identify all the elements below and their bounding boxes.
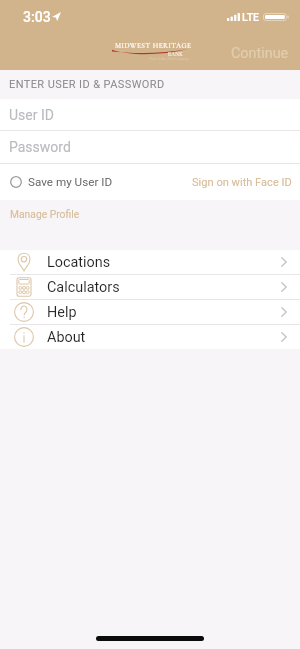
staticText: Locations: [47, 254, 111, 271]
button[interactable]: Save my User ID: [0, 175, 119, 189]
staticText: BANK: [168, 51, 183, 57]
button[interactable]: User ID: [0, 99, 300, 130]
staticText: Calculators: [47, 279, 120, 296]
button[interactable]: Password: [0, 131, 300, 163]
staticText: MIDWEST HERITAGE: [115, 41, 192, 50]
button[interactable]: About: [0, 325, 300, 349]
staticText: User ID: [9, 107, 54, 123]
staticText: Help: [47, 304, 77, 321]
staticText: Sign on with Face ID: [192, 176, 292, 189]
button[interactable]: Locations: [0, 250, 300, 274]
button[interactable]: Sign on with Face ID: [184, 170, 300, 195]
staticText: Password: [9, 139, 71, 155]
staticText: LTE: [242, 11, 259, 23]
button[interactable]: Help: [0, 300, 300, 324]
staticText: 3:03: [23, 9, 51, 25]
staticText: Your Life. Our Legacy.: [149, 56, 190, 61]
button[interactable]: Continue: [220, 40, 300, 66]
staticText: Manage Profile: [10, 208, 80, 220]
button[interactable]: Calculators: [0, 275, 300, 299]
staticText: ENTER USER ID & PASSWORD: [9, 78, 165, 91]
staticText: About: [47, 329, 86, 346]
staticText: Continue: [231, 45, 289, 62]
staticText: Save my User ID: [28, 175, 113, 189]
button[interactable]: Manage Profile: [0, 200, 90, 228]
